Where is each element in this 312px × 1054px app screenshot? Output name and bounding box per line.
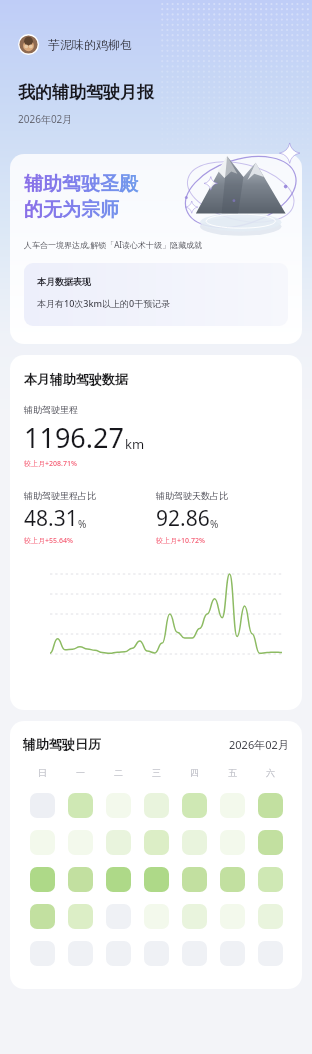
- staticText: 辅助驾驶天数占比: [156, 490, 228, 501]
- staticText: 2026年02月: [18, 112, 73, 126]
- staticText: 人车合一境界达成,解锁「AI读心术十级」隐藏成就: [24, 239, 202, 250]
- staticText: 92.86: [156, 504, 210, 533]
- staticText: 48.31: [24, 504, 78, 533]
- button[interactable]: [144, 830, 169, 855]
- staticText: 芋泥味的鸡柳包: [48, 37, 132, 52]
- staticText: 六: [266, 767, 275, 778]
- button[interactable]: [106, 904, 131, 929]
- button[interactable]: [144, 867, 169, 892]
- button[interactable]: [182, 793, 207, 818]
- staticText: 一: [76, 767, 85, 778]
- button[interactable]: [106, 941, 131, 966]
- button[interactable]: [182, 867, 207, 892]
- button[interactable]: [30, 904, 55, 929]
- button[interactable]: [258, 830, 283, 855]
- button[interactable]: [220, 793, 245, 818]
- staticText: 2026年02月: [229, 737, 289, 752]
- staticText: km: [125, 435, 145, 453]
- staticText: 辅助驾驶日历: [23, 736, 101, 752]
- staticText: 较上月+208.71%: [24, 459, 77, 469]
- button[interactable]: [144, 793, 169, 818]
- button[interactable]: [30, 941, 55, 966]
- button[interactable]: 芋泥味的鸡柳包: [18, 32, 132, 57]
- button[interactable]: [220, 904, 245, 929]
- button[interactable]: [220, 830, 245, 855]
- staticText: 较上月+10.72%: [156, 536, 205, 546]
- staticText: 三: [152, 767, 161, 778]
- staticText: 五: [228, 767, 237, 778]
- button[interactable]: [258, 941, 283, 966]
- staticText: 二: [114, 767, 123, 778]
- button[interactable]: [182, 830, 207, 855]
- button[interactable]: [68, 867, 93, 892]
- button[interactable]: [68, 941, 93, 966]
- staticText: 日: [38, 767, 47, 778]
- button[interactable]: 本月辅助驾驶数据: [10, 355, 302, 710]
- staticText: 辅助驾驶里程: [24, 404, 78, 415]
- button[interactable]: [220, 941, 245, 966]
- staticText: 本月辅助驾驶数据: [24, 371, 128, 387]
- staticText: 1196.27: [24, 419, 124, 456]
- button[interactable]: [106, 830, 131, 855]
- staticText: 本月数据表现: [37, 276, 91, 287]
- button[interactable]: [258, 904, 283, 929]
- button[interactable]: [30, 793, 55, 818]
- button[interactable]: [182, 904, 207, 929]
- button[interactable]: [144, 904, 169, 929]
- button[interactable]: [144, 941, 169, 966]
- button[interactable]: [30, 867, 55, 892]
- staticText: 辅助驾驶里程占比: [24, 490, 96, 501]
- button[interactable]: [258, 867, 283, 892]
- button[interactable]: 辅助驾驶天数占比: [156, 490, 288, 546]
- button[interactable]: 辅助驾驶日历: [10, 721, 302, 989]
- staticText: 本月有10次3km以上的0干预记录: [37, 297, 171, 309]
- staticText: %: [78, 517, 87, 531]
- staticText: 我的辅助驾驶月报: [18, 82, 154, 103]
- button[interactable]: [30, 830, 55, 855]
- staticText: 四: [190, 767, 199, 778]
- button[interactable]: [106, 867, 131, 892]
- button[interactable]: [68, 904, 93, 929]
- button[interactable]: 辅助驾驶圣殿 的无为宗师: [10, 154, 302, 344]
- button[interactable]: [68, 830, 93, 855]
- button[interactable]: [106, 793, 131, 818]
- button[interactable]: 本月数据表现: [24, 263, 288, 326]
- staticText: 辅助驾驶圣殿 的无为宗师: [24, 172, 138, 221]
- staticText: 较上月+55.64%: [24, 536, 73, 546]
- button[interactable]: [220, 867, 245, 892]
- button[interactable]: [258, 793, 283, 818]
- button[interactable]: [68, 793, 93, 818]
- staticText: %: [210, 517, 219, 531]
- button[interactable]: 辅助驾驶里程占比: [24, 490, 156, 546]
- button[interactable]: [182, 941, 207, 966]
